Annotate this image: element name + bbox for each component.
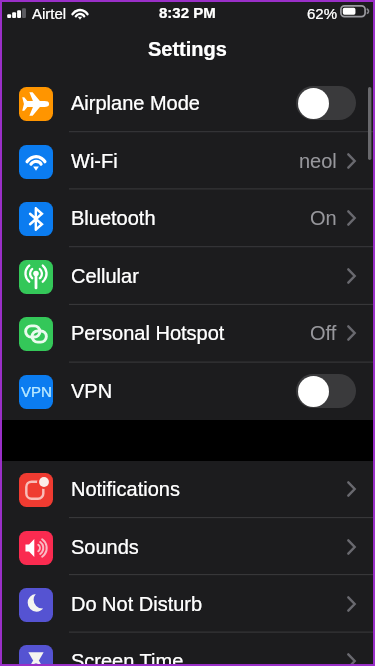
button[interactable]: Toggle switch	[296, 86, 356, 120]
staticText: Notifications	[71, 478, 180, 500]
button[interactable]: Wi-Fi	[0, 132, 375, 189]
staticText: Wi-Fi	[71, 150, 118, 172]
button[interactable]: Cellular	[0, 247, 375, 305]
staticText: 62%	[307, 5, 338, 22]
staticText: VPN	[71, 380, 113, 402]
staticText: Personal Hotspot	[71, 322, 225, 344]
button[interactable]: VPN	[0, 362, 375, 420]
button[interactable]: Airplane Mode	[0, 74, 375, 132]
button[interactable]: Bluetooth	[0, 189, 375, 247]
button[interactable]: Screen Time	[0, 632, 375, 666]
button[interactable]: Personal Hotspot	[0, 304, 375, 362]
staticText: Do Not Disturb	[71, 593, 203, 615]
staticText: Sounds	[71, 536, 139, 558]
staticText: Settings	[148, 38, 227, 60]
staticText: neol	[299, 150, 337, 172]
staticText: Airplane Mode	[71, 92, 200, 114]
staticText: 8:32 PM	[159, 4, 216, 21]
button[interactable]: Notifications	[0, 461, 375, 517]
button[interactable]: Do Not Disturb	[0, 575, 375, 633]
staticText: VPN	[21, 383, 52, 400]
staticText: Screen Time	[71, 650, 184, 666]
button[interactable]: Toggle switch	[296, 374, 356, 408]
staticText: On	[310, 207, 337, 229]
staticText: Cellular	[71, 265, 139, 287]
staticText: Airtel	[32, 5, 67, 22]
staticText: Bluetooth	[71, 207, 156, 229]
button[interactable]: Sounds	[0, 518, 375, 575]
staticText: Off	[310, 322, 337, 344]
